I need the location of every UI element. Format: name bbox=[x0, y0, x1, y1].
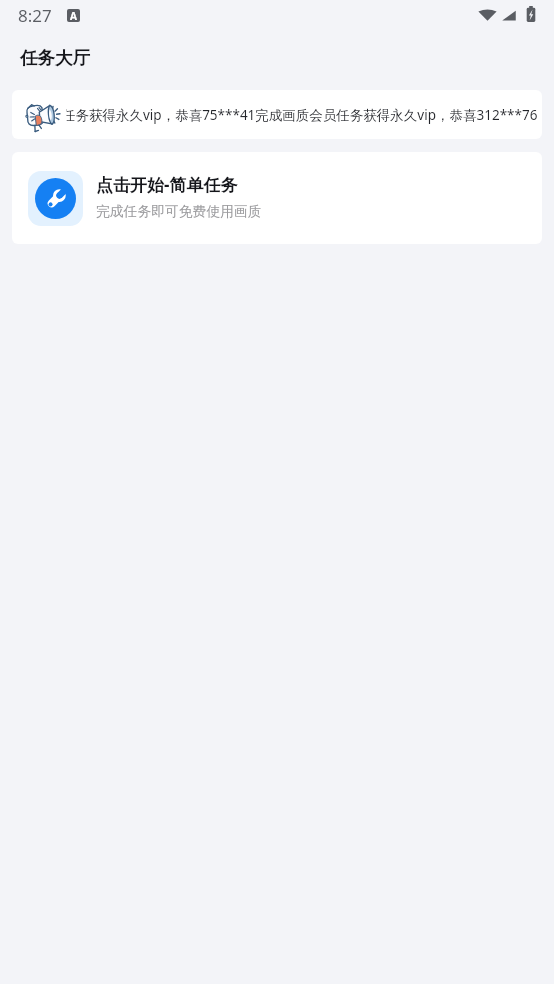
staticText: 完成任务即可免费使用画质 bbox=[96, 203, 262, 220]
button[interactable]: Announcement bbox=[12, 90, 542, 139]
button[interactable]: 点击开始-简单任务 bbox=[12, 152, 542, 244]
staticText: A bbox=[70, 9, 77, 22]
other: Announcement bbox=[24, 98, 58, 132]
staticText: 8:27 bbox=[18, 4, 52, 27]
staticText: 任务获得永久vip，恭喜75***41完成画质会员任务获得永久vip，恭喜312… bbox=[66, 106, 538, 124]
staticText: 任务大厅 bbox=[20, 47, 90, 69]
staticText: 点击开始-简单任务 bbox=[96, 173, 238, 196]
